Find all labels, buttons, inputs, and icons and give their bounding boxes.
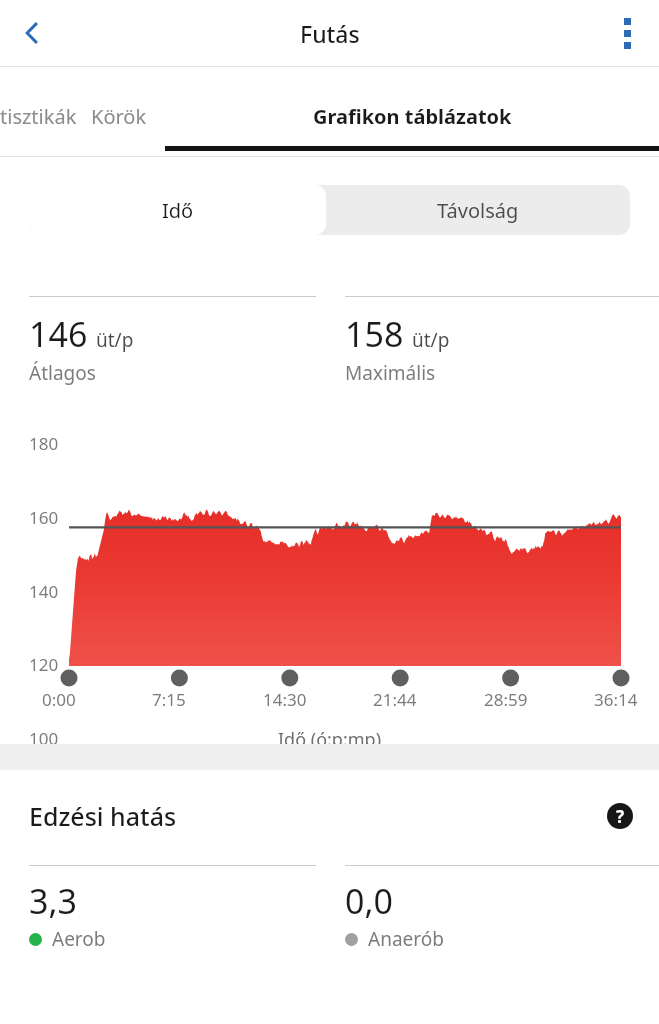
- button[interactable]: Grafikon táblázatok: [165, 67, 659, 151]
- staticText: 140: [29, 580, 59, 603]
- staticText: 120: [29, 653, 59, 676]
- staticText: 0:00: [42, 688, 76, 711]
- staticText: 158: [345, 311, 404, 357]
- staticText: Anaerób: [368, 926, 444, 952]
- staticText: tisztikák: [0, 103, 77, 130]
- staticText: 7:15: [152, 688, 186, 711]
- staticText: 0,0: [345, 878, 394, 924]
- staticText: 146: [29, 311, 88, 357]
- staticText: üt/p: [96, 327, 134, 353]
- staticText: Távolság: [437, 197, 519, 224]
- staticText: Edzési hatás: [29, 799, 177, 833]
- staticText: 3,3: [29, 878, 78, 924]
- staticText: 36:14: [594, 688, 638, 711]
- staticText: 160: [29, 506, 59, 529]
- staticText: Átlagos: [29, 360, 96, 386]
- staticText: 21:44: [373, 688, 417, 711]
- button[interactable]: Körök: [91, 67, 147, 146]
- button[interactable]: Idő: [29, 185, 326, 235]
- staticText: ?: [616, 805, 625, 828]
- staticText: 28:59: [484, 688, 528, 711]
- staticText: Maximális: [345, 360, 436, 386]
- button[interactable]: tisztikák: [0, 67, 77, 146]
- staticText: Grafikon táblázatok: [313, 103, 512, 130]
- button[interactable]: Help: [595, 791, 645, 841]
- button[interactable]: More options: [595, 1, 659, 65]
- staticText: 14:30: [263, 688, 307, 711]
- staticText: Futás: [300, 18, 360, 49]
- staticText: Aerob: [52, 926, 106, 952]
- staticText: 100: [29, 727, 59, 750]
- staticText: üt/p: [412, 327, 450, 353]
- staticText: Idő: [162, 197, 194, 224]
- staticText: Idő (ó:p:mp): [278, 727, 382, 752]
- button[interactable]: Back: [0, 1, 64, 65]
- button[interactable]: Távolság: [326, 185, 630, 235]
- staticText: Körök: [91, 103, 147, 130]
- staticText: 180: [29, 432, 59, 455]
